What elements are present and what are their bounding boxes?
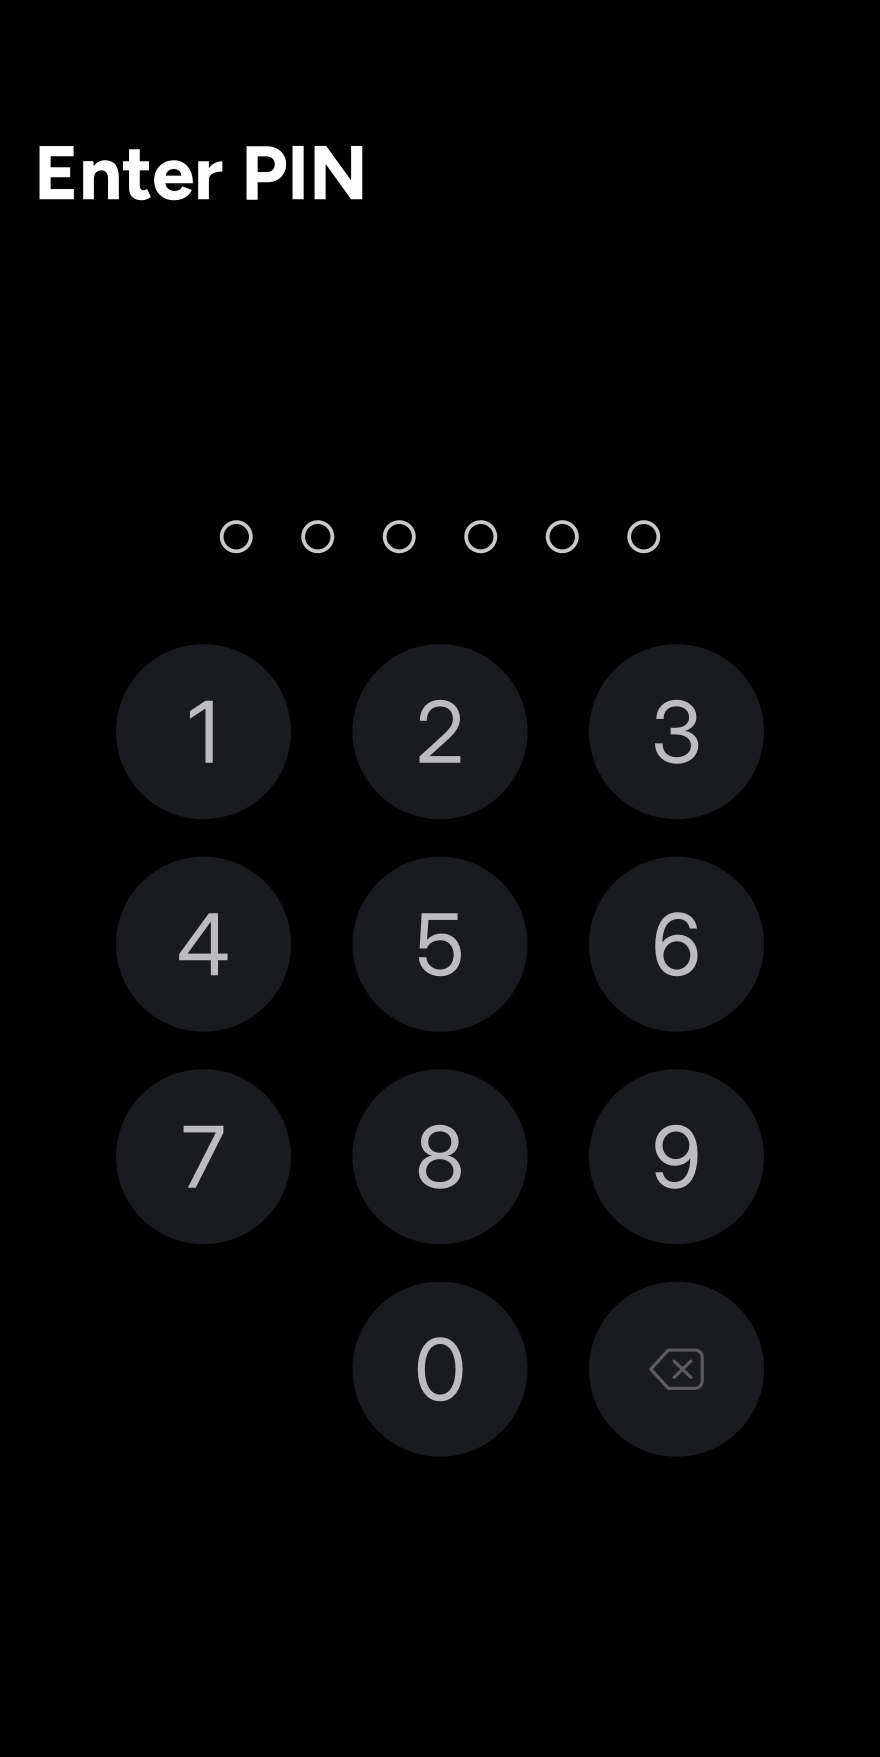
- staticText: 1: [188, 680, 219, 783]
- staticText: 5: [415, 893, 464, 996]
- staticText: 3: [651, 680, 702, 783]
- staticText: 6: [651, 893, 701, 996]
- staticText: Enter PIN: [34, 127, 368, 218]
- button[interactable]: 8: [352, 1069, 527, 1244]
- staticText: 4: [177, 893, 230, 996]
- button[interactable]: 9: [589, 1069, 764, 1244]
- button[interactable]: 4: [116, 857, 291, 1032]
- button[interactable]: 6: [589, 857, 764, 1032]
- staticText: 0: [414, 1318, 466, 1421]
- button[interactable]: 0: [352, 1282, 527, 1457]
- staticText: 8: [415, 1105, 465, 1208]
- button[interactable]: 3: [589, 644, 764, 819]
- button[interactable]: 1: [116, 644, 291, 819]
- button[interactable]: 7: [116, 1069, 291, 1244]
- button[interactable]: Delete: [589, 1282, 764, 1457]
- staticText: 2: [416, 680, 464, 783]
- button[interactable]: 5: [352, 857, 527, 1032]
- staticText: 7: [181, 1105, 225, 1208]
- staticText: 9: [651, 1105, 701, 1208]
- button[interactable]: 2: [352, 644, 527, 819]
